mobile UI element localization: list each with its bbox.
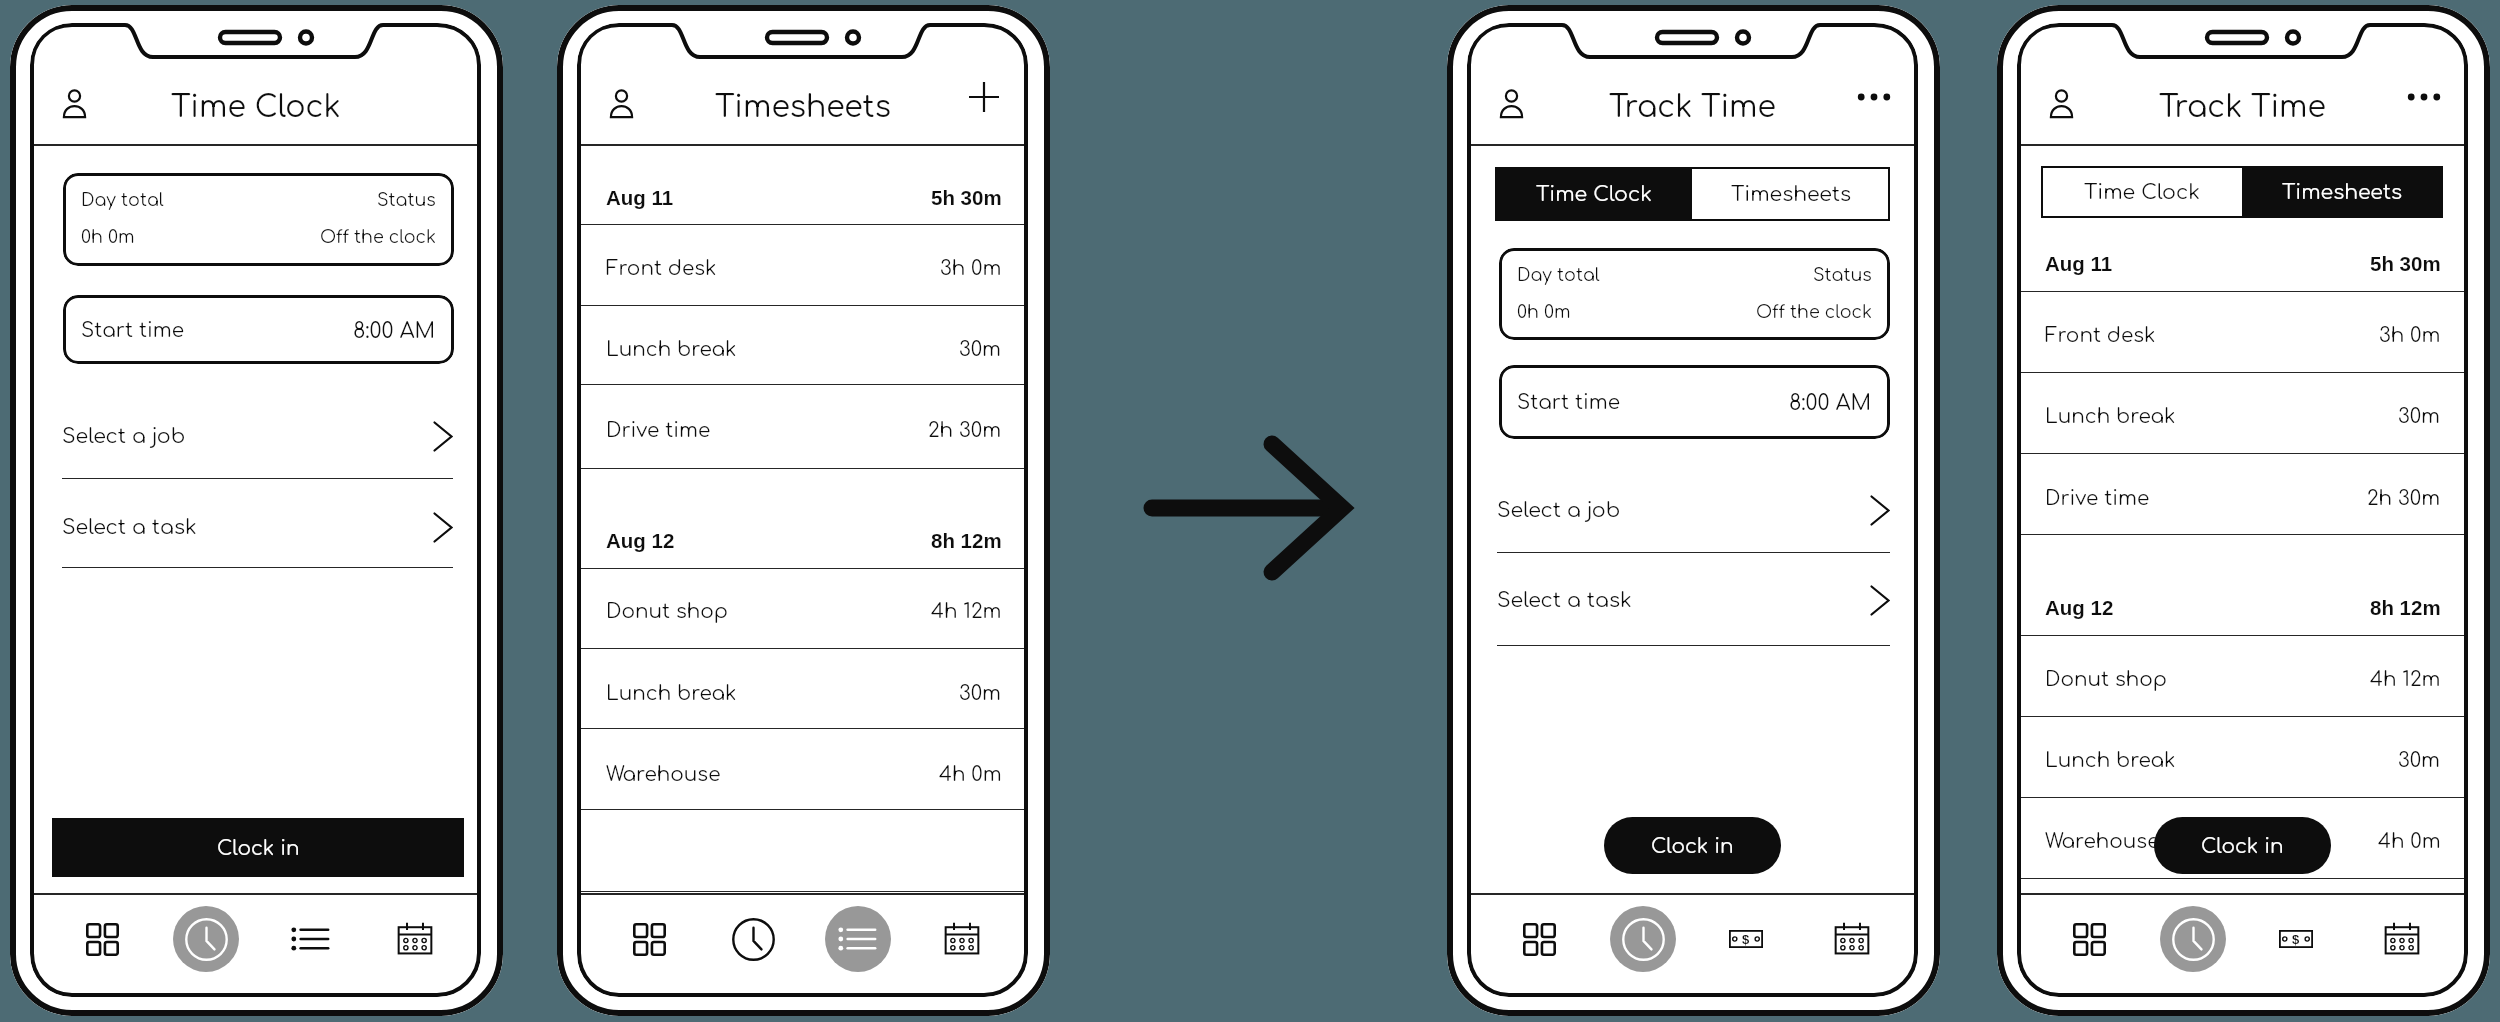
- staticText: Lunch break: [606, 338, 737, 360]
- button[interactable]: Time clock: [2159, 905, 2227, 973]
- button[interactable]: Clock in: [52, 818, 464, 877]
- button[interactable]: Calendar: [381, 905, 449, 973]
- staticText: 8h 12m: [931, 529, 1002, 552]
- staticText: Donut shop: [606, 600, 728, 622]
- staticText: Select a task: [1497, 589, 1632, 612]
- button[interactable]: Calendar: [928, 905, 996, 973]
- button[interactable]: Lunch break: [606, 323, 1002, 375]
- staticText: 2h 30m: [928, 419, 1002, 441]
- staticText: Start time: [81, 319, 184, 341]
- staticText: Track Time: [1609, 91, 1776, 124]
- staticText: Lunch break: [606, 682, 737, 704]
- staticText: Timesheets: [1731, 183, 1852, 206]
- button[interactable]: Pay: [2262, 905, 2330, 973]
- staticText: Time Clock: [2084, 181, 2200, 204]
- staticText: 8:00 AM: [1789, 391, 1872, 414]
- staticText: Warehouse: [2045, 830, 2160, 852]
- button[interactable]: Add: [962, 75, 1006, 119]
- staticText: 30m: [959, 338, 1002, 360]
- button[interactable]: Timesheets: [824, 905, 892, 973]
- staticText: 2h 30m: [2367, 487, 2441, 509]
- button[interactable]: Time Clock: [2041, 166, 2242, 218]
- button[interactable]: Aug 11: [2045, 237, 2441, 289]
- button[interactable]: Clock in: [2154, 817, 2331, 874]
- staticText: Off the clock: [1756, 303, 1872, 323]
- staticText: Timesheets: [2282, 181, 2403, 204]
- staticText: 30m: [959, 682, 1002, 704]
- staticText: Select a task: [62, 516, 197, 539]
- button[interactable]: Lunch break: [2045, 390, 2441, 442]
- button[interactable]: Front desk: [2045, 309, 2441, 361]
- button[interactable]: Time clock: [172, 905, 240, 973]
- button[interactable]: Lunch break: [2045, 734, 2441, 786]
- button[interactable]: Timesheets: [2242, 166, 2443, 218]
- staticText: Front desk: [2045, 324, 2156, 346]
- staticText: Lunch break: [2045, 749, 2176, 771]
- staticText: 3h 0m: [2379, 324, 2441, 346]
- staticText: 4h 0m: [939, 763, 1002, 785]
- button[interactable]: Donut shop: [606, 585, 1002, 637]
- staticText: Clock in: [217, 837, 300, 859]
- staticText: Select a job: [1497, 499, 1621, 522]
- button[interactable]: Calendar: [2368, 905, 2436, 973]
- button[interactable]: Select a job: [62, 412, 453, 460]
- staticText: Drive time: [606, 419, 711, 441]
- staticText: Warehouse: [606, 763, 721, 785]
- button[interactable]: Calendar: [1818, 905, 1886, 973]
- staticText: 4h 12m: [2370, 668, 2441, 690]
- button[interactable]: Time clock: [719, 905, 787, 973]
- staticText: 8h 12m: [2370, 596, 2441, 619]
- staticText: Drive time: [2045, 487, 2150, 509]
- button[interactable]: Profile: [1489, 81, 1533, 125]
- button[interactable]: Donut shop: [2045, 653, 2441, 705]
- staticText: Track Time: [2159, 91, 2326, 124]
- staticText: Donut shop: [2045, 668, 2167, 690]
- button[interactable]: Front desk: [606, 242, 1002, 294]
- staticText: Clock in: [1651, 835, 1734, 857]
- button[interactable]: Dashboard: [1505, 905, 1573, 973]
- button[interactable]: Warehouse: [606, 748, 1002, 800]
- button[interactable]: Select a task: [1497, 576, 1890, 624]
- staticText: Aug 11: [2045, 252, 2113, 275]
- staticText: Off the clock: [320, 228, 436, 248]
- staticText: Lunch break: [2045, 405, 2176, 427]
- button[interactable]: Aug 12: [606, 514, 1002, 566]
- button[interactable]: More options: [1852, 75, 1896, 119]
- button[interactable]: Select a task: [62, 503, 453, 551]
- staticText: 8:00 AM: [353, 319, 436, 342]
- button[interactable]: Lunch break: [606, 667, 1002, 719]
- button[interactable]: Pay: [1712, 905, 1780, 973]
- button[interactable]: Aug 12: [2045, 581, 2441, 633]
- staticText: Time Clock: [1536, 183, 1652, 206]
- button[interactable]: Warehouse: [2045, 815, 2441, 867]
- staticText: 30m: [2398, 749, 2441, 771]
- button[interactable]: Time clock: [1609, 905, 1677, 973]
- button[interactable]: Dashboard: [2055, 905, 2123, 973]
- button[interactable]: Clock in: [1604, 817, 1781, 874]
- staticText: 30m: [2398, 405, 2441, 427]
- button[interactable]: Drive time: [2045, 472, 2441, 524]
- button[interactable]: Profile: [52, 81, 96, 125]
- staticText: $: [2292, 932, 2300, 947]
- button[interactable]: Timesheets: [1692, 167, 1890, 221]
- staticText: 5h 30m: [931, 186, 1002, 209]
- button[interactable]: Drive time: [606, 404, 1002, 456]
- button[interactable]: Time Clock: [1495, 167, 1692, 221]
- button[interactable]: Profile: [2039, 81, 2083, 125]
- staticText: 5h 30m: [2370, 252, 2441, 275]
- button[interactable]: Dashboard: [615, 905, 683, 973]
- staticText: Time Clock: [171, 91, 341, 124]
- staticText: Status: [1813, 266, 1872, 286]
- button[interactable]: Dashboard: [68, 905, 136, 973]
- staticText: Aug 11: [606, 186, 674, 209]
- staticText: Status: [377, 191, 436, 211]
- button[interactable]: Profile: [599, 81, 643, 125]
- button[interactable]: Select a job: [1497, 486, 1890, 534]
- button[interactable]: Aug 11: [606, 171, 1002, 223]
- staticText: Aug 12: [2045, 596, 2114, 619]
- button[interactable]: More options: [2402, 75, 2446, 119]
- staticText: $: [1742, 932, 1750, 947]
- staticText: 0h 0m: [1517, 303, 1571, 323]
- button[interactable]: Timesheets: [277, 905, 345, 973]
- staticText: 4h 0m: [2378, 830, 2441, 852]
